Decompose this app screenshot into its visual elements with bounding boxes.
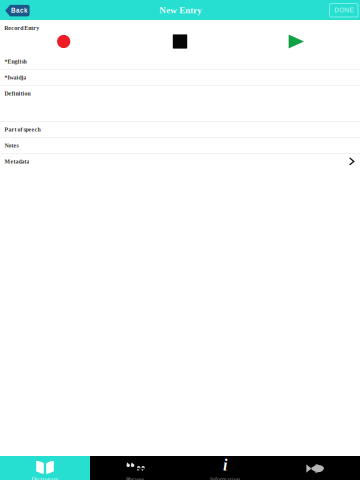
staticText: i	[223, 456, 227, 474]
button[interactable]: i	[180, 456, 270, 480]
button[interactable]: Fish	[270, 456, 360, 480]
staticText: Information	[210, 476, 240, 480]
staticText: Phrases	[126, 476, 144, 480]
button[interactable]: Play	[238, 34, 354, 49]
staticText: New Entry	[159, 5, 202, 15]
staticText: Part of speech	[4, 126, 40, 133]
staticText: Notes	[4, 142, 18, 149]
staticText: DONE	[334, 7, 353, 14]
button[interactable]: Back	[5, 5, 30, 16]
staticText: *English	[4, 58, 26, 65]
button[interactable]: Dictionary	[0, 456, 90, 480]
staticText: Back	[11, 7, 28, 14]
staticText: Metadata	[4, 158, 29, 165]
staticText: Record Entry	[4, 25, 39, 31]
button[interactable]: Notes	[0, 138, 360, 153]
staticText: Definition	[4, 90, 30, 97]
button[interactable]: Phrases	[90, 456, 180, 480]
button[interactable]: DONE	[330, 4, 358, 17]
button[interactable]: *Iwaidja	[0, 70, 360, 85]
staticText: *Iwaidja	[4, 74, 26, 81]
button[interactable]: Definition	[0, 86, 360, 121]
button[interactable]: *English	[0, 54, 360, 69]
button[interactable]: Stop	[122, 34, 238, 49]
button[interactable]: Part of speech	[0, 122, 360, 137]
button[interactable]: Record	[6, 34, 122, 49]
button[interactable]: Metadata	[0, 154, 360, 169]
staticText: Dictionary	[31, 476, 58, 480]
